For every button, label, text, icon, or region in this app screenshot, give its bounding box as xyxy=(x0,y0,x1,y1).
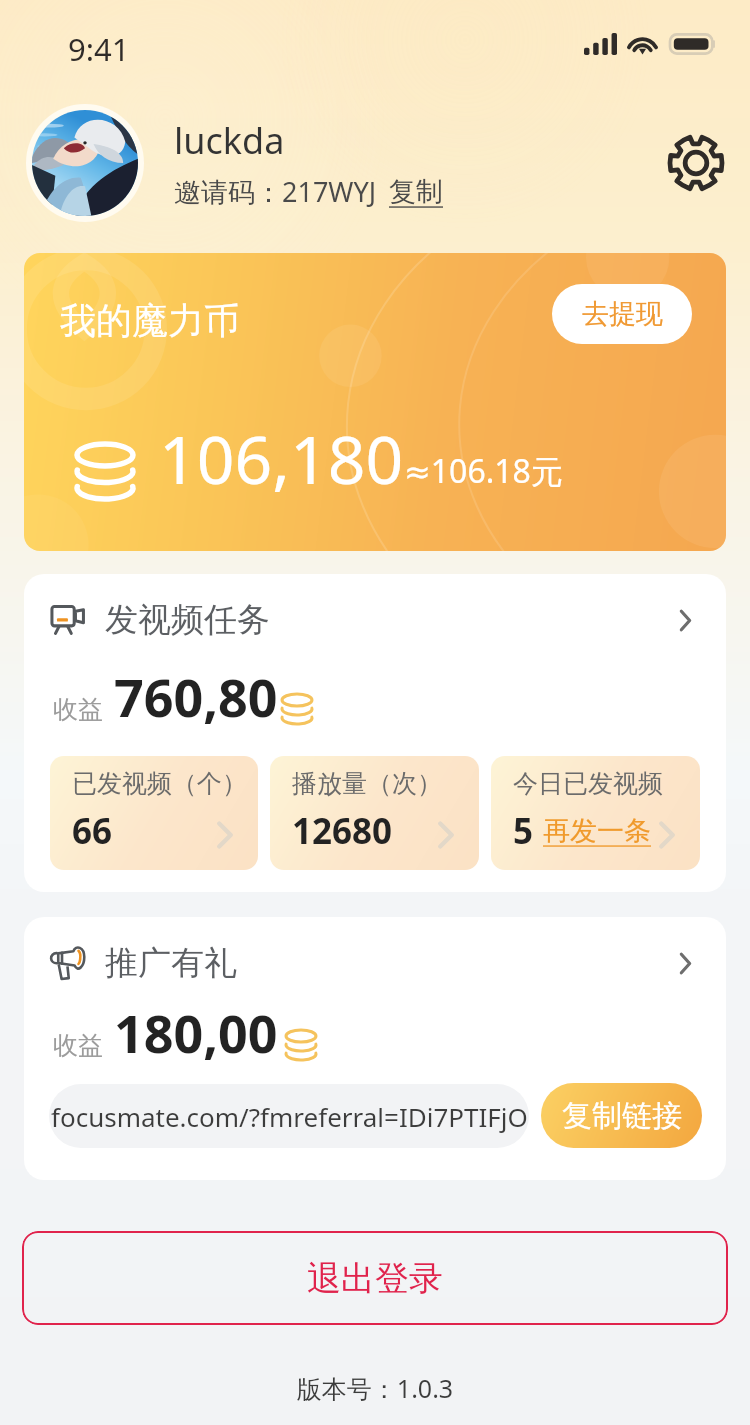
button[interactable]: 复制 xyxy=(389,175,443,209)
staticText: 收益 xyxy=(53,694,103,725)
button[interactable]: 复制链接 xyxy=(541,1083,702,1148)
staticText: 复制 xyxy=(389,175,443,209)
button[interactable]: 已发视频（个） xyxy=(50,756,258,870)
staticText: 去提现 xyxy=(582,297,663,331)
staticText: 收益 xyxy=(53,1030,103,1061)
staticText: luckda xyxy=(174,116,285,165)
button[interactable]: 去提现 xyxy=(552,284,692,344)
button[interactable]: Settings xyxy=(664,131,728,195)
staticText: 退出登录 xyxy=(307,1257,443,1300)
staticText: ≈106.18元 xyxy=(404,449,563,493)
button[interactable]: 我的魔力币 xyxy=(24,253,726,551)
staticText: 发视频任务 xyxy=(105,599,270,641)
button[interactable]: Avatar xyxy=(26,104,144,222)
staticText: 推广有礼 xyxy=(105,942,237,984)
staticText: 9:41 xyxy=(68,28,130,70)
staticText: 106,180 xyxy=(159,413,404,503)
button[interactable]: 今日已发视频 xyxy=(491,756,700,870)
staticText: 760,80 xyxy=(114,661,278,732)
staticText: 邀请码：217WYJ xyxy=(174,173,377,210)
staticText: focusmate.com/?fmreferral=IDi7PTIFjO xyxy=(51,1099,528,1134)
staticText: 复制链接 xyxy=(562,1097,682,1135)
button[interactable]: focusmate.com/?fmreferral=IDi7PTIFjO xyxy=(49,1084,529,1148)
button[interactable]: 推广有礼 xyxy=(24,942,726,984)
button[interactable]: 播放量（次） xyxy=(270,756,479,870)
button[interactable]: 发视频任务 xyxy=(24,599,726,641)
staticText: 180,00 xyxy=(114,997,278,1068)
staticText: 再发一条 xyxy=(543,814,651,848)
staticText: 12680 xyxy=(292,807,393,855)
staticText: 今日已发视频 xyxy=(513,768,663,799)
staticText: 已发视频（个） xyxy=(72,768,247,799)
staticText: 66 xyxy=(72,807,113,855)
staticText: 我的魔力币 xyxy=(60,298,240,343)
button[interactable]: 退出登录 xyxy=(22,1231,728,1325)
staticText: 5 xyxy=(513,807,534,855)
staticText: 版本号：1.0.3 xyxy=(0,1371,750,1405)
staticText: 播放量（次） xyxy=(292,768,442,799)
